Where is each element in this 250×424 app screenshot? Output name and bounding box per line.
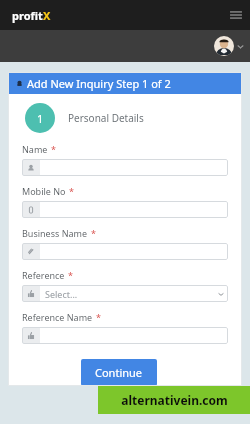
staticText: alternativein.com — [121, 392, 228, 408]
staticText: Reference Name — [22, 311, 93, 323]
staticText: Continue — [95, 365, 143, 380]
button[interactable]: Select... — [22, 285, 228, 302]
staticText: * — [91, 227, 96, 239]
staticText: Add New Inquiry Step 1 of 2 — [27, 76, 171, 91]
staticText: Business Name — [22, 227, 88, 239]
button[interactable] — [22, 159, 228, 176]
staticText: Mobile No — [22, 185, 66, 197]
button[interactable] — [22, 201, 228, 218]
staticText: * — [51, 143, 56, 155]
staticText: * — [69, 185, 74, 197]
button[interactable]: Account menu — [214, 36, 244, 56]
staticText: X — [43, 8, 51, 23]
staticText: Select... — [45, 288, 78, 300]
staticText: * — [96, 311, 101, 323]
staticText: Personal Details — [68, 111, 144, 125]
button[interactable] — [22, 243, 228, 260]
staticText: * — [68, 269, 73, 281]
staticText: Reference — [22, 269, 65, 281]
button[interactable]: Add New Inquiry Step 1 of 2 — [8, 72, 242, 94]
button[interactable] — [22, 327, 228, 344]
button[interactable]: Continue — [81, 359, 157, 386]
staticText: 1 — [37, 111, 44, 126]
staticText: Name — [22, 143, 48, 155]
button[interactable]: Menu — [229, 8, 243, 22]
staticText: profit — [12, 8, 43, 23]
